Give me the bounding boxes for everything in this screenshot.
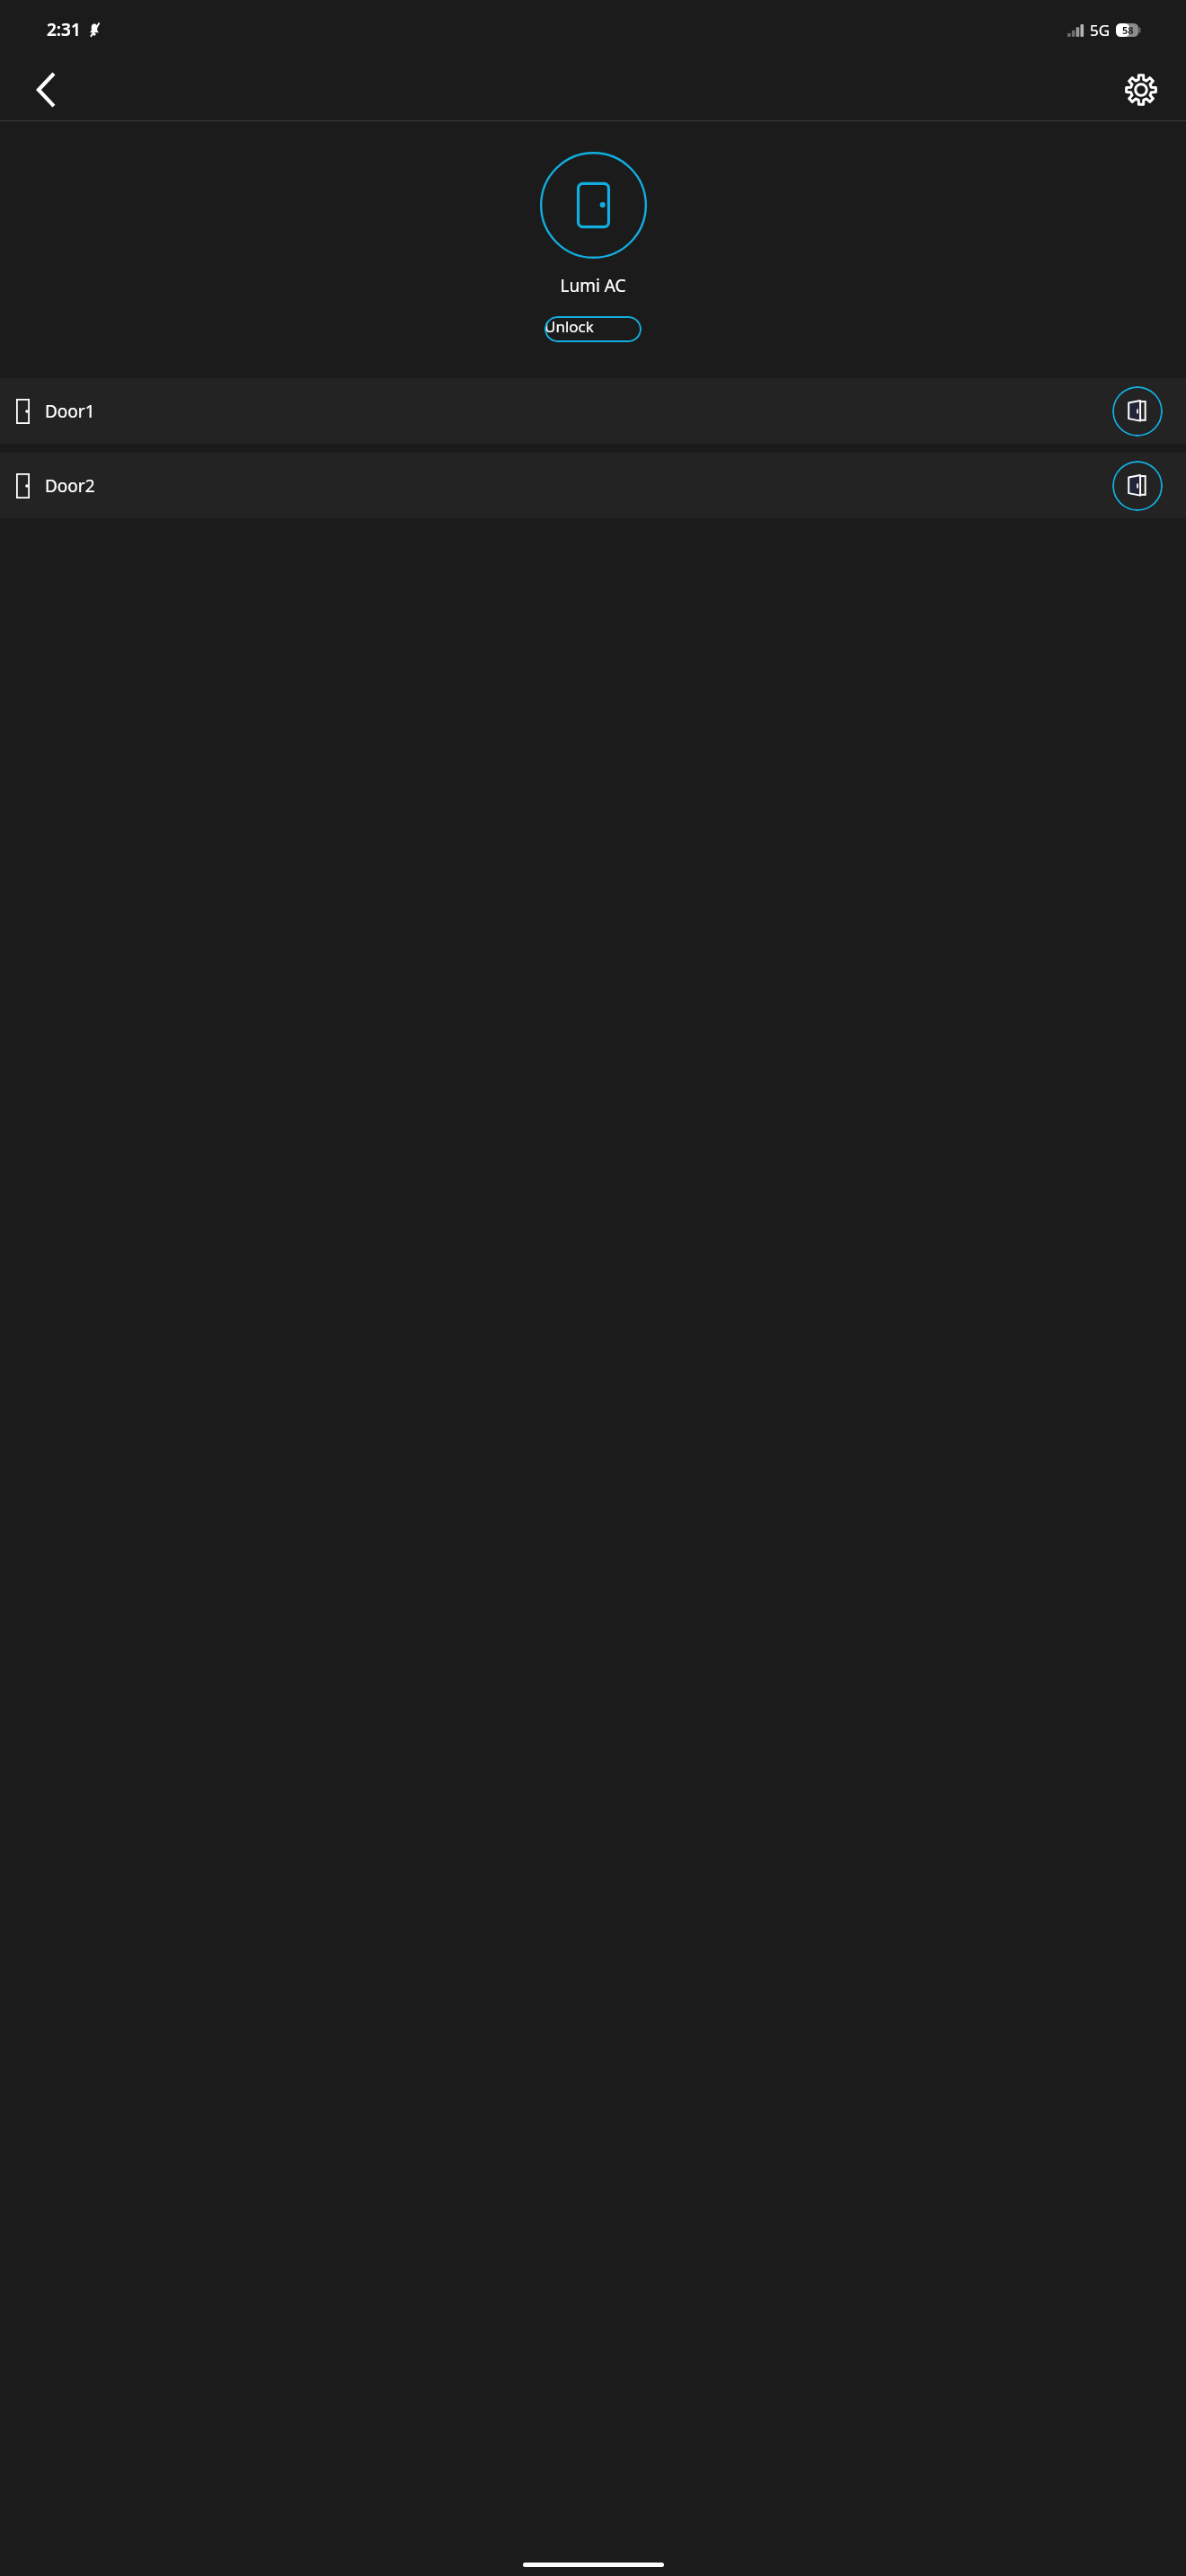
- button[interactable]: Back: [22, 66, 68, 113]
- button[interactable]: Open Door1: [1112, 386, 1163, 437]
- staticText: Door1: [45, 400, 95, 423]
- button[interactable]: Settings: [1118, 66, 1164, 113]
- button[interactable]: Unlock Records: [544, 316, 642, 342]
- staticText: Unlock Records: [544, 316, 642, 342]
- staticText: 2:31: [47, 18, 81, 41]
- staticText: 58: [1122, 23, 1134, 37]
- button[interactable]: Lumi AC door: [540, 152, 647, 259]
- button[interactable]: Door2: [0, 453, 1186, 518]
- staticText: Door2: [45, 474, 95, 498]
- staticText: 5G: [1090, 20, 1111, 40]
- button[interactable]: Door1: [0, 378, 1186, 444]
- button[interactable]: Open Door2: [1112, 461, 1163, 511]
- staticText: Lumi AC: [560, 274, 626, 297]
